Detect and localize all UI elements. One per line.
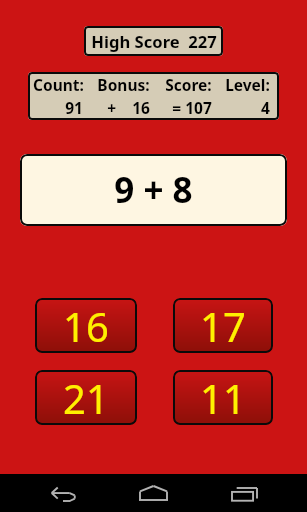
staticText: 16 (63, 299, 109, 353)
button[interactable]: Recent apps (222, 474, 266, 512)
staticText: 11 (200, 371, 246, 425)
staticText: 4 (261, 97, 270, 118)
button[interactable]: 11 (173, 370, 273, 425)
button[interactable]: High Score (84, 26, 223, 56)
button[interactable]: 21 (35, 370, 137, 425)
staticText: High Score (91, 30, 180, 53)
staticText: 227 (188, 30, 217, 53)
staticText: = 107 (172, 97, 212, 118)
button[interactable]: 17 (173, 298, 273, 353)
staticText: 17 (200, 299, 246, 353)
button[interactable]: Home (131, 474, 176, 512)
staticText: Level: (225, 74, 270, 95)
button[interactable]: 16 (35, 298, 137, 353)
staticText: Bonus: (97, 74, 150, 95)
staticText: 91 (65, 97, 83, 118)
staticText: Count: (33, 74, 83, 95)
button[interactable]: Back (41, 474, 85, 512)
staticText: 9 + 8 (114, 166, 193, 214)
staticText: + 16 (107, 97, 150, 118)
staticText: 21 (63, 371, 109, 425)
staticText: Score: (165, 74, 212, 95)
